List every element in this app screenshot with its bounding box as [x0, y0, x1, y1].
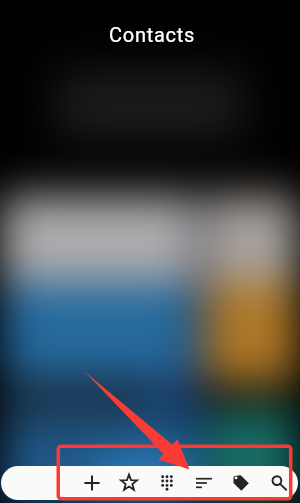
button[interactable]: Search [262, 468, 296, 498]
button[interactable]: Sort [187, 468, 221, 498]
button[interactable]: Labels [224, 468, 258, 498]
button[interactable]: Favourites [112, 468, 146, 498]
button[interactable]: Dialpad [150, 468, 184, 498]
staticText: Contacts [2, 23, 300, 503]
button[interactable]: Add contact [75, 468, 109, 498]
